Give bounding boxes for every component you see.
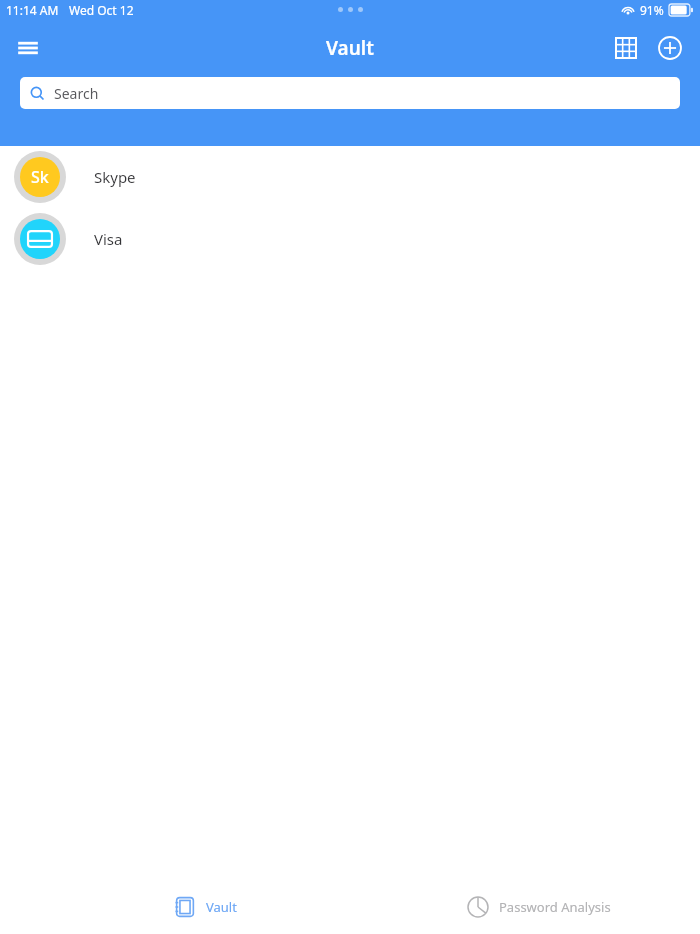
staticText: Search	[54, 84, 99, 103]
staticText: 11:14 AM	[6, 2, 59, 18]
button[interactable]: Vault	[168, 890, 243, 924]
staticText: Sk	[31, 166, 49, 188]
staticText: 91%	[640, 2, 664, 18]
staticText: Password Analysis	[499, 898, 611, 916]
button[interactable]: Add item	[648, 26, 692, 70]
button[interactable]: Search	[20, 77, 680, 109]
button[interactable]: Grid view	[604, 26, 648, 70]
staticText: Vault	[206, 898, 237, 916]
staticText: Vault	[326, 35, 374, 61]
button[interactable]: Visa	[0, 208, 700, 270]
button[interactable]: Menu	[8, 28, 48, 68]
other: Password Analysis	[467, 896, 489, 918]
button[interactable]: Password Analysis	[461, 890, 617, 924]
staticText: Wed Oct 12	[69, 2, 134, 18]
button[interactable]: Sk	[0, 146, 700, 208]
other: Vault	[174, 896, 196, 918]
staticText: Visa	[94, 229, 123, 249]
staticText: Skype	[94, 167, 136, 187]
